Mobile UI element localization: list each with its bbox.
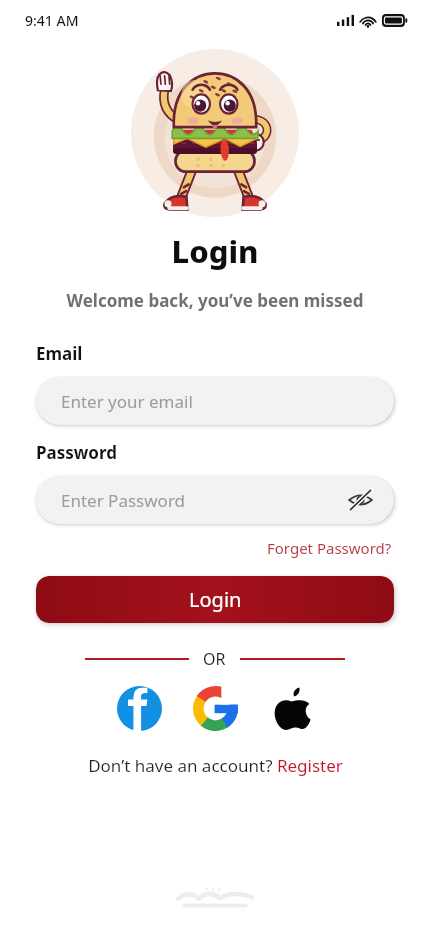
staticText: OR xyxy=(203,648,226,670)
button[interactable]: Forget Password? xyxy=(265,536,394,560)
button[interactable]: Enter Password xyxy=(36,476,394,524)
staticText: Password xyxy=(36,441,117,464)
button[interactable]: Sign in with Facebook xyxy=(116,685,162,731)
staticText: Login xyxy=(189,586,242,613)
staticText: Enter your email xyxy=(61,390,193,413)
button[interactable]: Don’t have an account? Register xyxy=(82,751,349,780)
button[interactable]: Sign in with Google xyxy=(192,685,238,731)
button[interactable]: Enter your email xyxy=(36,377,394,425)
button[interactable]: Sign in with Apple xyxy=(268,685,314,731)
staticText: Don’t have an account? Register xyxy=(88,754,343,777)
staticText: Enter Password xyxy=(61,489,186,512)
staticText: 9:41 AM xyxy=(25,11,79,30)
staticText: Welcome back, you’ve been missed xyxy=(0,289,430,312)
button[interactable]: Show password xyxy=(346,486,374,514)
staticText: Email xyxy=(36,342,83,365)
staticText: Login xyxy=(0,230,430,272)
button[interactable]: Login xyxy=(36,576,394,623)
staticText: Forget Password? xyxy=(267,538,392,558)
